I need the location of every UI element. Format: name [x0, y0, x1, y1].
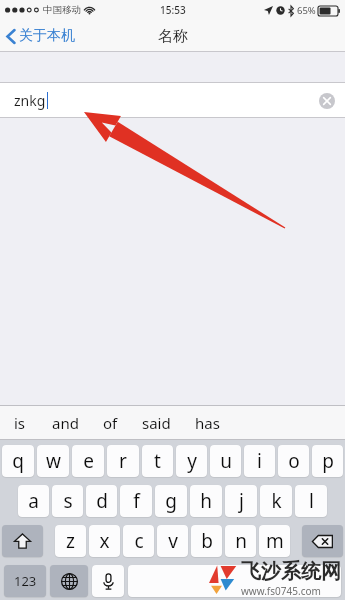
button[interactable]: Switch keyboard [50, 565, 88, 597]
staticText: u [220, 448, 232, 474]
staticText: znkg [14, 91, 46, 110]
button[interactable]: Backspace [302, 525, 343, 557]
staticText: n [235, 528, 247, 554]
button[interactable]: Clear text [319, 93, 335, 109]
button[interactable]: znkg [0, 82, 345, 118]
staticText: d [96, 488, 108, 514]
button[interactable]: r [107, 445, 139, 477]
button[interactable]: h [190, 485, 222, 517]
button[interactable]: Space [128, 565, 341, 597]
staticText: f [133, 488, 140, 514]
button[interactable]: z [55, 525, 86, 557]
staticText: v [168, 528, 178, 554]
staticText: said [142, 413, 171, 433]
staticText: g [165, 488, 177, 514]
staticText: j [239, 488, 244, 514]
button[interactable]: g [155, 485, 187, 517]
staticText: p [322, 448, 334, 474]
staticText: m [266, 528, 284, 554]
button[interactable]: of [101, 409, 120, 437]
button[interactable]: has [193, 409, 222, 437]
button[interactable]: p [312, 445, 343, 477]
button[interactable]: j [225, 485, 257, 517]
button[interactable]: q [2, 445, 34, 477]
button[interactable]: a [18, 485, 49, 517]
button[interactable]: b [191, 525, 222, 557]
button[interactable]: Dictate [92, 565, 124, 597]
button[interactable]: m [259, 525, 290, 557]
staticText: has [195, 413, 220, 433]
button[interactable]: d [86, 485, 117, 517]
button[interactable]: v [157, 525, 188, 557]
staticText: c [134, 528, 144, 554]
button[interactable]: y [176, 445, 207, 477]
staticText: 中国移动 [43, 4, 81, 16]
staticText: o [288, 448, 300, 474]
staticText: 65% [297, 4, 316, 17]
staticText: b [201, 528, 213, 554]
button[interactable]: is [12, 409, 28, 437]
staticText: 名称 [158, 27, 188, 46]
button[interactable]: u [210, 445, 241, 477]
button[interactable]: and [50, 409, 81, 437]
staticText: www.fs0745.com [241, 584, 321, 598]
button[interactable]: 123 [4, 565, 46, 597]
button[interactable]: n [225, 525, 256, 557]
button[interactable]: w [37, 445, 69, 477]
staticText: q [12, 448, 24, 474]
button[interactable]: Shift [2, 525, 43, 557]
staticText: i [257, 448, 262, 474]
staticText: e [83, 448, 94, 474]
staticText: h [200, 488, 212, 514]
button[interactable]: said [140, 409, 173, 437]
button[interactable]: t [142, 445, 173, 477]
button[interactable]: 关于本机 [0, 23, 83, 49]
staticText: 15:53 [160, 3, 186, 17]
staticText: and [52, 413, 79, 433]
staticText: 飞沙系统网 [241, 559, 341, 584]
button[interactable]: l [295, 485, 327, 517]
staticText: is [14, 413, 26, 433]
button[interactable]: x [89, 525, 120, 557]
staticText: w [46, 448, 61, 474]
button[interactable]: i [244, 445, 275, 477]
staticText: z [66, 528, 75, 554]
staticText: k [271, 488, 282, 514]
button[interactable]: s [52, 485, 83, 517]
staticText: a [28, 488, 39, 514]
staticText: l [309, 488, 314, 514]
button[interactable]: k [260, 485, 292, 517]
button[interactable]: f [120, 485, 152, 517]
staticText: 关于本机 [19, 27, 75, 45]
staticText: s [63, 488, 73, 514]
staticText: y [187, 448, 197, 474]
staticText: x [99, 528, 110, 554]
staticText: t [154, 448, 161, 474]
staticText: of [103, 413, 118, 433]
button[interactable]: c [123, 525, 154, 557]
button[interactable]: e [72, 445, 104, 477]
staticText: r [119, 448, 127, 474]
staticText: 123 [14, 572, 37, 590]
button[interactable]: o [278, 445, 309, 477]
